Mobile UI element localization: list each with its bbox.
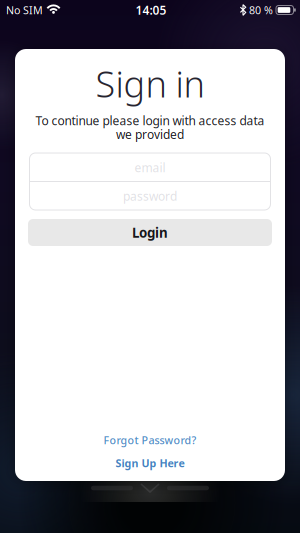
staticText: No SIM bbox=[6, 3, 43, 17]
button[interactable]: Sign Up Here bbox=[111, 452, 188, 474]
button[interactable]: Login bbox=[28, 219, 272, 246]
staticText: Sign in bbox=[95, 60, 204, 107]
staticText: 80 % bbox=[249, 3, 273, 17]
staticText: Forgot Password? bbox=[103, 433, 196, 447]
staticText: Sign Up Here bbox=[115, 456, 184, 470]
textField[interactable]: password bbox=[30, 182, 269, 209]
button[interactable]: Forgot Password? bbox=[99, 429, 200, 451]
staticText: we provided bbox=[116, 126, 184, 142]
staticText: email bbox=[134, 159, 165, 175]
staticText: Login bbox=[132, 224, 168, 241]
staticText: password bbox=[123, 188, 177, 204]
staticText: To continue please login with access dat… bbox=[35, 113, 264, 128]
staticText: 14:05 bbox=[135, 2, 166, 18]
